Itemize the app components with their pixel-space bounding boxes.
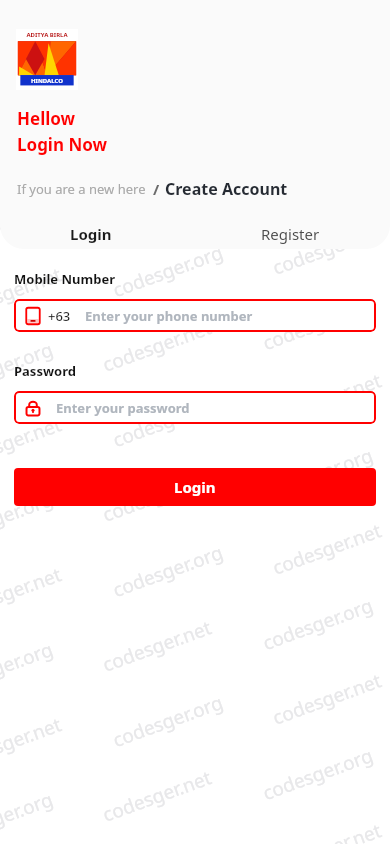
staticText: codesger.net [269,667,385,731]
staticText: Login [70,224,112,244]
staticText: codesger.org [109,689,227,753]
staticText: codesger.net [99,164,215,228]
staticText: codesger.net [0,111,65,175]
staticText: codesger.org [259,292,377,356]
staticText: If you are a new here [17,180,146,198]
staticText: codesger.net [99,314,215,378]
staticText: codesger.org [0,186,57,250]
staticText: codesger.org [259,742,377,806]
staticText: codesger.net [99,464,215,528]
staticText: codesger.org [259,592,377,656]
staticText: codesger.net [0,411,65,475]
staticText: codesger.org [259,142,377,206]
staticText: Enter your phone number [85,307,253,325]
button[interactable]: Password [14,391,376,424]
staticText: codesger.org [0,636,57,700]
staticText: Login [174,477,216,497]
staticText: codesger.org [109,239,227,303]
staticText: codesger.org [0,486,57,550]
staticText: ADITYA BIRLA [26,31,68,39]
button[interactable]: Login [14,468,376,506]
button[interactable]: Phone [14,299,376,332]
staticText: codesger.org [109,389,227,453]
staticText: Register [261,224,320,244]
staticText: codesger.net [269,367,385,431]
staticText: codesger.net [269,217,385,281]
staticText: codesger.org [0,336,57,400]
staticText: codesger.net [99,764,215,828]
button[interactable]: Login [70,224,112,249]
other: Password [24,399,42,417]
staticText: Create Account [165,178,288,200]
button[interactable]: Register [261,224,320,244]
staticText: codesger.net [0,261,65,325]
staticText: +63 [48,307,71,325]
staticText: Hellow [17,107,76,130]
staticText: codesger.net [269,817,385,844]
staticText: / [153,179,160,199]
staticText: codesger.org [109,539,227,603]
staticText: codesger.net [269,517,385,581]
staticText: Login Now [17,133,108,156]
staticText: codesger.net [99,614,215,678]
staticText: codesger.org [0,786,57,844]
other: Phone [24,307,42,325]
staticText: Password [14,362,76,380]
staticText: codesger.org [0,36,57,100]
staticText: codesger.org [259,442,377,506]
staticText: HINDALCO [31,77,63,85]
staticText: Mobile Number [14,270,115,288]
button[interactable]: Create Account [165,178,288,200]
staticText: codesger.net [0,711,65,775]
staticText: Enter your password [56,399,190,417]
staticText: codesger.net [0,561,65,625]
